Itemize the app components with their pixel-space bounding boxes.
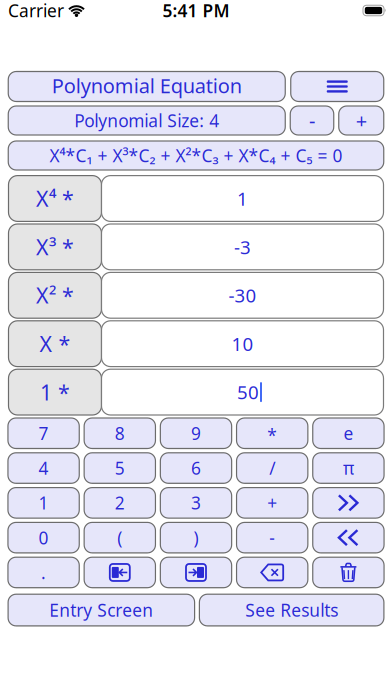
staticText: X³ *	[36, 233, 74, 261]
staticText: )	[193, 526, 198, 549]
staticText: 1	[237, 186, 248, 211]
button[interactable]: 2	[84, 488, 155, 518]
button[interactable]: X * coefficient	[101, 321, 383, 367]
button[interactable]: 9	[160, 418, 232, 448]
staticText: +	[356, 107, 367, 134]
button[interactable]: Clear	[313, 557, 384, 588]
staticText: See Results	[245, 598, 338, 621]
staticText: .	[41, 561, 46, 584]
button[interactable]: X *	[8, 321, 101, 367]
button[interactable]: )	[160, 522, 232, 553]
button[interactable]: .	[8, 557, 79, 588]
staticText: -	[309, 107, 315, 134]
button[interactable]: Polynomial Equation	[8, 71, 285, 101]
staticText: π	[343, 456, 354, 479]
button[interactable]: X³ * coefficient	[101, 224, 383, 270]
staticText: 4	[39, 456, 49, 479]
staticText: e	[343, 422, 353, 445]
button[interactable]: π	[313, 453, 384, 483]
button[interactable]: Cursor to end	[160, 557, 232, 588]
staticText: Polynomial Equation	[52, 72, 242, 99]
button[interactable]: Increase size	[339, 106, 384, 135]
staticText: -3	[234, 234, 251, 259]
button[interactable]: 5	[84, 453, 155, 483]
staticText: 9	[191, 422, 201, 445]
staticText: 8	[115, 422, 125, 445]
button[interactable]: X² * coefficient	[101, 272, 383, 318]
button[interactable]: 6	[160, 453, 232, 483]
staticText: Carrier	[8, 0, 64, 22]
staticText: -30	[228, 283, 256, 308]
button[interactable]: Next field	[313, 488, 384, 518]
staticText: Polynomial Size: 4	[74, 109, 219, 132]
staticText: 6	[191, 456, 201, 479]
button[interactable]: 1	[8, 488, 79, 518]
button[interactable]: 4	[8, 453, 79, 483]
button[interactable]: -	[237, 522, 308, 553]
button[interactable]: Decrease size	[290, 106, 334, 135]
staticText: 5	[115, 456, 125, 479]
staticText: *	[267, 424, 277, 447]
staticText: 3	[191, 491, 201, 514]
staticText: Entry Screen	[49, 598, 153, 621]
button[interactable]: X² *	[8, 272, 101, 318]
button[interactable]: X⁴ *	[8, 176, 101, 221]
staticText: 1 *	[40, 378, 70, 406]
staticText: (	[117, 526, 122, 549]
button[interactable]: 1 *	[8, 369, 101, 415]
staticText: 2	[115, 491, 125, 514]
staticText: 5:41 PM	[162, 0, 229, 22]
staticText: X⁴*C₁ + X³*C₂ + X²*C₃ + X*C₄ + C₅ = 0	[49, 144, 342, 167]
button[interactable]: 1 * coefficient	[101, 369, 383, 415]
button[interactable]: See Results	[199, 594, 384, 626]
staticText: X⁴ *	[36, 184, 74, 213]
button[interactable]: Delete	[237, 557, 308, 588]
button[interactable]: X⁴ * coefficient	[101, 176, 383, 221]
button[interactable]: 8	[84, 418, 155, 448]
button[interactable]: Entry Screen	[8, 594, 195, 626]
staticText: -	[269, 526, 275, 549]
staticText: 0	[39, 526, 49, 549]
button[interactable]: /	[237, 453, 308, 483]
button[interactable]: +	[237, 488, 308, 518]
staticText: X² *	[36, 281, 74, 309]
staticText: 50	[237, 380, 259, 404]
staticText: X *	[39, 329, 70, 358]
staticText: +	[267, 491, 277, 514]
button[interactable]: *	[237, 418, 308, 448]
staticText: 1	[39, 491, 49, 514]
button[interactable]: X³ *	[8, 224, 101, 270]
staticText: /	[269, 456, 275, 479]
button[interactable]: 7	[8, 418, 79, 448]
button[interactable]: Menu	[291, 71, 384, 101]
staticText: 10	[231, 331, 253, 356]
button[interactable]: 0	[8, 522, 79, 553]
button[interactable]: (	[84, 522, 155, 553]
button[interactable]: Cursor to start	[84, 557, 155, 588]
button[interactable]: Polynomial Size: 4	[8, 106, 285, 135]
button[interactable]: Previous field	[313, 522, 384, 553]
button[interactable]: e	[313, 418, 384, 448]
button[interactable]: 3	[160, 488, 232, 518]
staticText: 7	[39, 422, 49, 445]
